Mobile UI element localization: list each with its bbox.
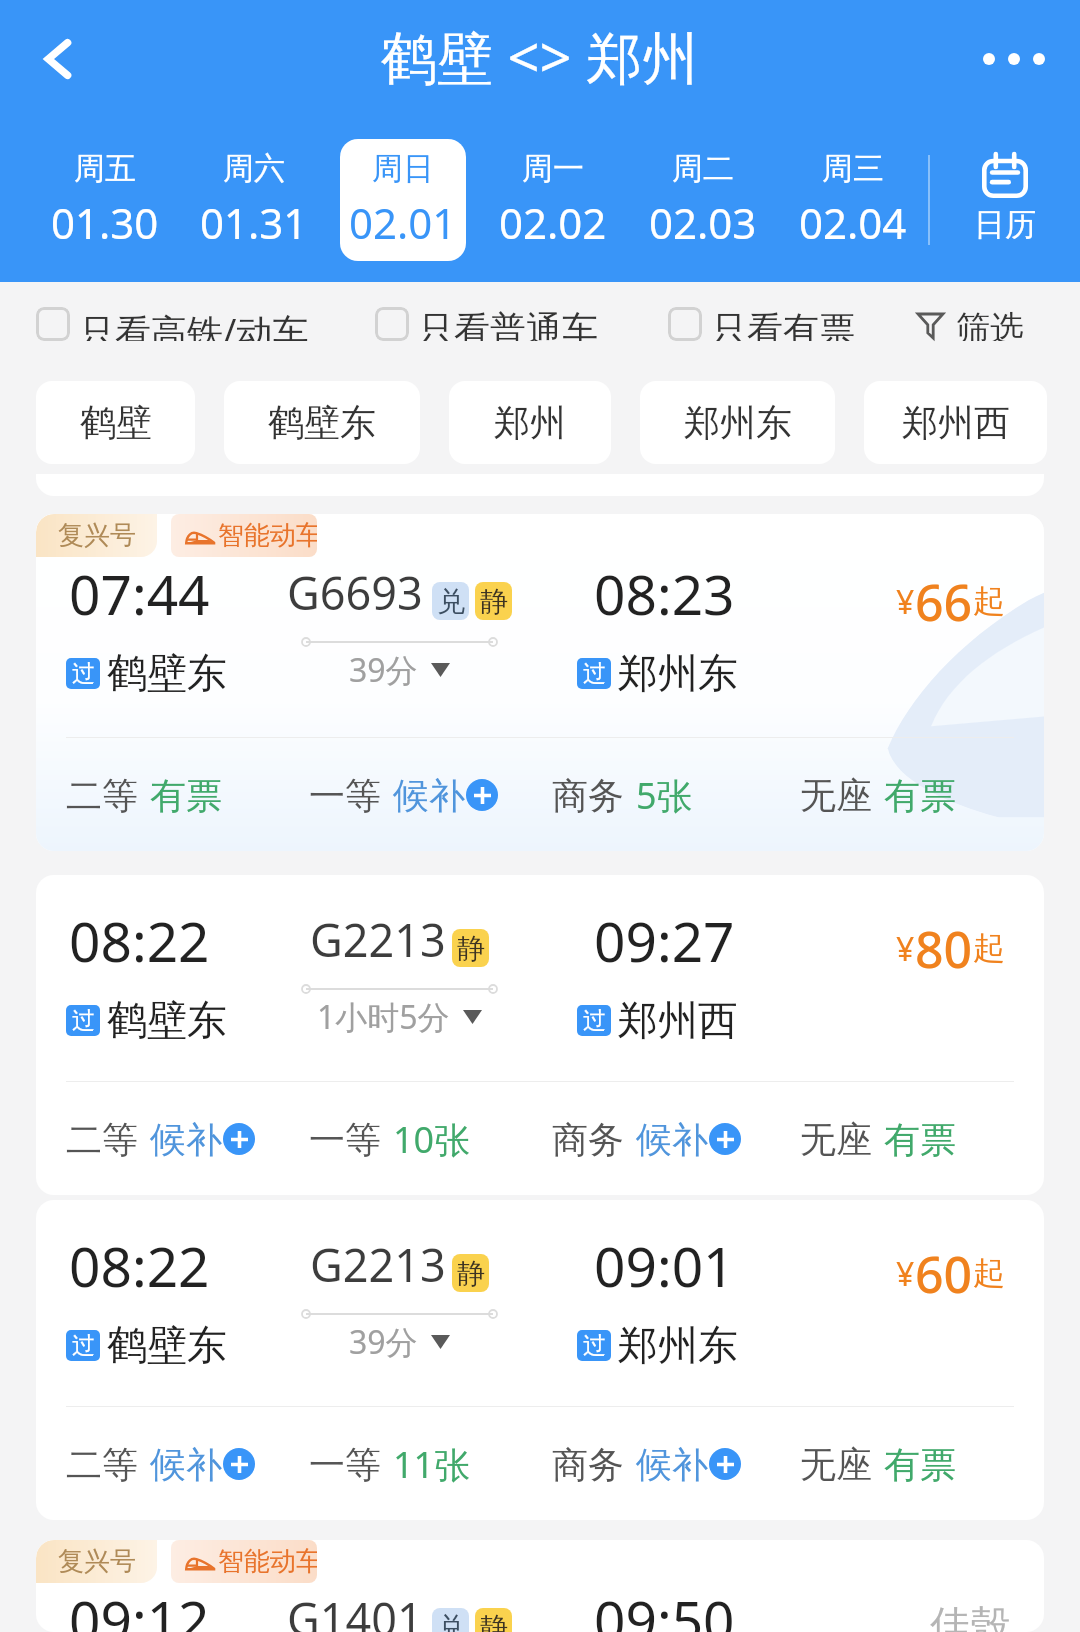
staticText: ¥ [896,580,915,624]
staticText: G2213 [310,1234,446,1295]
staticText: 07:44 [69,556,210,631]
staticText: 兑 [437,584,465,619]
button[interactable]: 鹤壁东 [224,381,420,464]
staticText: 08:22 [69,903,210,978]
button[interactable]: 无座 [800,1109,1024,1169]
button[interactable]: 只看高铁/动车 [36,307,309,341]
staticText: 5张 [636,771,693,820]
button[interactable]: 郑州东 [640,381,835,464]
staticText: 周六 [223,149,285,188]
button[interactable]: 二等 [66,1109,309,1169]
staticText: 39分 [349,1320,418,1364]
staticText: 01.31 [200,194,308,251]
button[interactable]: 一等 [309,1434,552,1494]
button[interactable]: 无座 [800,765,1024,825]
staticText: 鹤壁东 [268,400,376,445]
staticText: 静 [457,931,485,966]
staticText: 有票 [884,1117,956,1162]
staticText: 郑州东 [684,400,792,445]
staticText: 商务 [552,1117,624,1162]
button[interactable]: 周三 [790,139,916,261]
staticText: 09:12 [69,1582,210,1632]
staticText: 只看有票 [711,307,855,341]
staticText: 商务 [552,1442,624,1487]
staticText: 过 [583,1006,606,1035]
button[interactable]: 复兴号 [36,1540,1044,1632]
button[interactable]: Calendar [930,109,1080,273]
staticText: 周五 [74,149,136,188]
staticText: 一等 [309,1117,381,1162]
staticText: 02.02 [499,194,607,251]
staticText: 02.03 [649,194,757,251]
staticText: 静 [480,584,508,619]
staticText: G2213 [310,909,446,970]
button[interactable]: 周日 [340,139,466,261]
button[interactable]: 商务 [552,765,800,825]
staticText: 过 [72,1006,95,1035]
staticText: 复兴号 [58,1545,136,1578]
staticText: 有票 [150,773,222,818]
staticText: 80 [915,915,973,983]
staticText: 02.01 [349,194,457,251]
staticText: 佳殼 [930,1600,1010,1632]
button[interactable]: 周二 [640,139,766,261]
button[interactable]: 周五 [42,139,167,261]
staticText: ¥ [896,1252,915,1296]
button[interactable]: More options [966,24,1062,94]
button[interactable]: 一等 [309,765,552,825]
staticText: 过 [72,1331,95,1360]
staticText: 候补 [636,1442,708,1487]
staticText: 09:27 [594,903,735,978]
staticText: 无座 [800,1117,872,1162]
staticText: 日历 [974,205,1036,244]
staticText: 候补 [393,773,465,818]
button[interactable]: 08:22 [36,1200,1044,1520]
staticText: 静 [457,1256,485,1291]
staticText: 智能动车 [218,519,317,552]
staticText: 02.04 [799,194,907,251]
staticText: 筛选 [956,307,1024,341]
staticText: 39分 [349,648,418,692]
button[interactable]: 只看有票 [668,307,855,341]
staticText: 66 [915,568,973,636]
staticText: 候补 [150,1117,222,1162]
staticText: 01.30 [51,194,159,251]
staticText: 智能动车 [218,1545,317,1578]
staticText: 有票 [884,1442,956,1487]
staticText: G1401 [287,1588,423,1632]
staticText: 无座 [800,1442,872,1487]
button[interactable]: 复兴号 [36,514,1044,851]
staticText: 过 [583,1331,606,1360]
button[interactable]: 郑州 [449,381,611,464]
staticText: 08:23 [594,556,735,631]
button[interactable]: 商务 [552,1109,800,1169]
button[interactable]: 商务 [552,1434,800,1494]
button[interactable]: 二等 [66,1434,309,1494]
staticText: 起 [973,581,1005,621]
button[interactable]: 郑州西 [864,381,1047,464]
staticText: 鹤壁东 [107,995,227,1045]
button[interactable]: 鹤壁 [36,381,195,464]
staticText: 二等 [66,1117,138,1162]
staticText: 过 [583,659,606,688]
button[interactable]: 08:22 [36,875,1044,1195]
staticText: 鹤壁 [80,400,152,445]
button[interactable]: 周一 [490,139,616,261]
staticText: 二等 [66,773,138,818]
button[interactable]: 一等 [309,1109,552,1169]
button[interactable]: Back [22,23,94,95]
staticText: 无座 [800,773,872,818]
staticText: 周日 [372,149,434,188]
button[interactable]: 筛选 [917,307,1024,341]
staticText: 郑州西 [902,400,1010,445]
staticText: 鹤壁东 [107,648,227,698]
button[interactable]: 无座 [800,1434,1024,1494]
staticText: 有票 [884,773,956,818]
staticText: 09:01 [594,1228,735,1303]
staticText: 一等 [309,1442,381,1487]
staticText: 起 [973,1253,1005,1293]
button[interactable]: 只看普通车 [375,307,598,341]
button[interactable]: 二等 [66,765,309,825]
button[interactable]: 周六 [191,139,316,261]
staticText: 候补 [636,1117,708,1162]
